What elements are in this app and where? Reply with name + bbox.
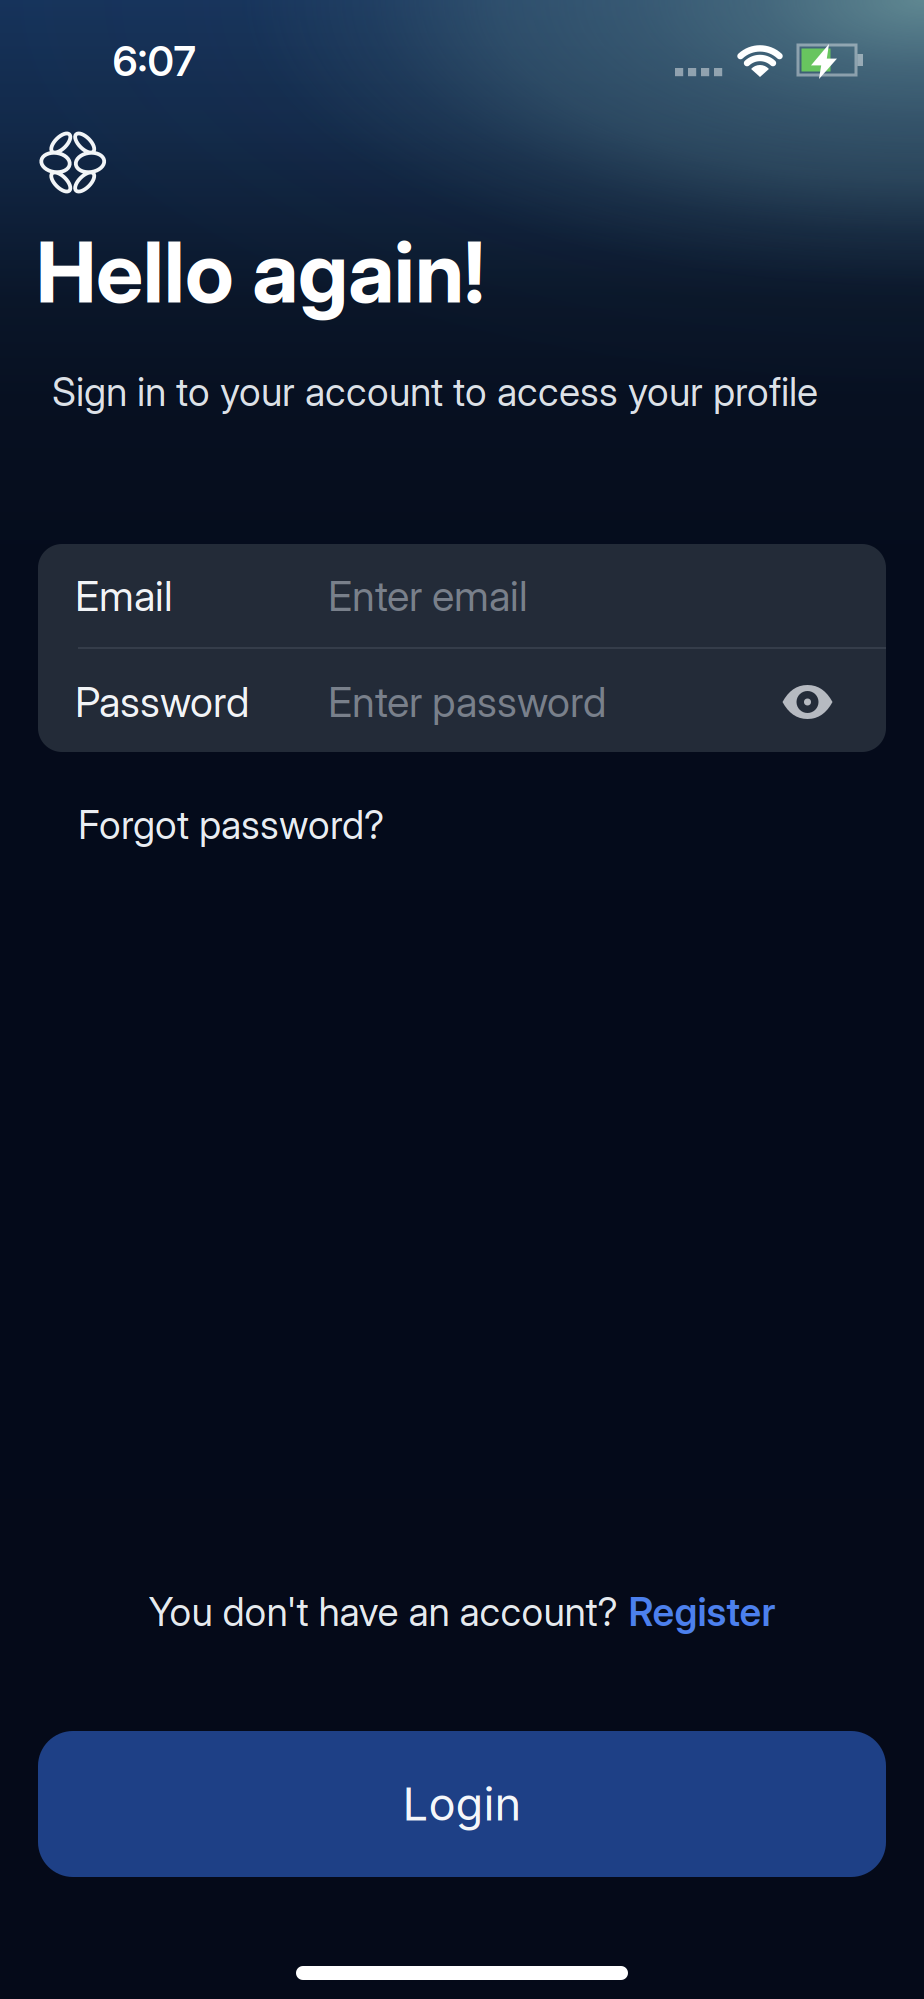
staticText: Password xyxy=(75,678,249,726)
staticText: You don't have an account? xyxy=(148,1589,617,1635)
staticText: Forgot password? xyxy=(78,802,384,848)
staticText: Sign in to your account to access your p… xyxy=(52,369,818,415)
staticText: Enter email xyxy=(38,583,155,609)
button[interactable]: Login xyxy=(38,1731,886,1877)
staticText: Register xyxy=(628,1589,775,1635)
staticText: Hello again! xyxy=(36,221,485,323)
button[interactable]: Show password xyxy=(771,666,843,738)
secureTextField[interactable]: Enter password xyxy=(38,689,886,715)
staticText: 6:07 xyxy=(112,37,195,85)
button[interactable]: Forgot password? xyxy=(78,802,384,848)
textField[interactable]: Enter email xyxy=(38,583,886,609)
button[interactable]: Register xyxy=(628,1589,775,1635)
staticText: Email xyxy=(75,572,173,620)
staticText: Enter password xyxy=(38,689,203,715)
staticText: Login xyxy=(402,1777,521,1831)
staticText: Enter password xyxy=(328,678,606,726)
staticText: Enter email xyxy=(328,572,528,620)
